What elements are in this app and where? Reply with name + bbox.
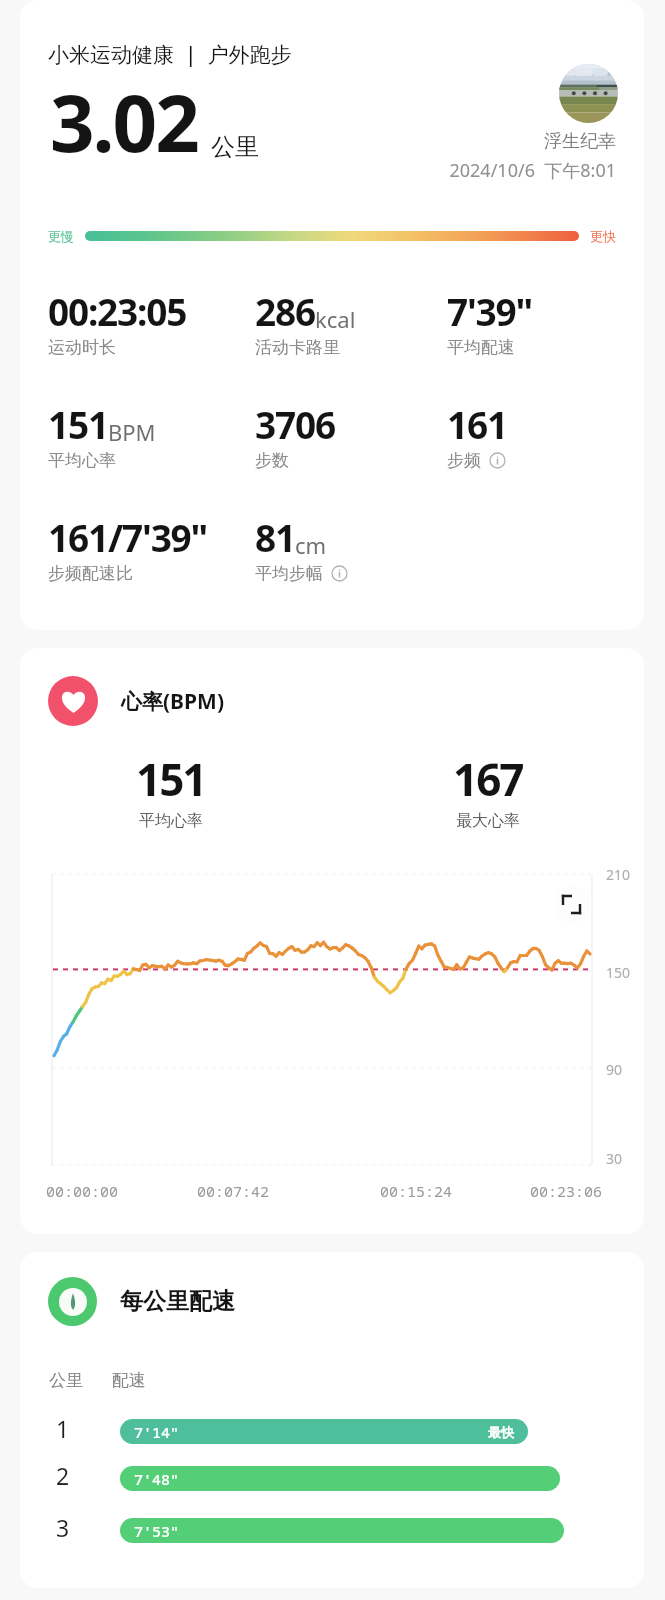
staticText: 更慢 (48, 228, 74, 244)
staticText: 最大心率 (456, 811, 520, 831)
staticText: 每公里配速 (120, 1287, 235, 1316)
button[interactable]: 7'48" (120, 1466, 560, 1491)
staticText: 心率(BPM) (121, 687, 225, 716)
staticText: 3.02 (50, 69, 198, 175)
staticText: 2 (56, 1460, 70, 1491)
staticText: 00:00:00 (46, 1181, 119, 1201)
staticText: BPM (108, 417, 156, 447)
staticText: 7'48" (134, 1469, 180, 1489)
staticText: 运动时长 (48, 337, 116, 358)
staticText: 3 (56, 1512, 70, 1543)
staticText: 161 (447, 399, 507, 449)
staticText: 151 (136, 749, 206, 809)
staticText: 平均心率 (48, 450, 116, 471)
button[interactable]: Expand chart (553, 886, 590, 923)
staticText: 150 (606, 963, 631, 982)
staticText: 286 (255, 286, 315, 336)
staticText: 公里 (49, 1370, 83, 1391)
staticText: 7'39" (447, 286, 533, 336)
staticText: 活动卡路里 (255, 337, 340, 358)
staticText: 00:23:06 (530, 1181, 603, 1201)
staticText: 161/7'39" (48, 512, 208, 562)
staticText: 167 (453, 749, 523, 809)
staticText: 平均步幅 (255, 563, 323, 584)
staticText: 2024/10/6 下午8:01 (416, 158, 616, 183)
staticText: 配速 (112, 1370, 146, 1391)
staticText: 3706 (255, 399, 335, 449)
button[interactable]: User avatar (559, 64, 618, 123)
staticText: 最快 (488, 1424, 514, 1440)
staticText: kcal (315, 304, 356, 334)
staticText: 00:23:05 (48, 286, 187, 336)
staticText: 平均配速 (447, 337, 515, 358)
staticText: 1 (56, 1413, 70, 1444)
staticText: 30 (606, 1149, 623, 1168)
staticText: 00:15:24 (380, 1181, 453, 1201)
staticText: 小米运动健康 | 户外跑步 (48, 40, 292, 69)
button[interactable]: 7'53" (120, 1518, 564, 1543)
staticText: 7'14" (134, 1422, 180, 1442)
staticText: 81 (255, 512, 295, 562)
staticText: 151 (48, 399, 108, 449)
staticText: 平均心率 (139, 811, 203, 831)
staticText: 210 (606, 865, 631, 884)
staticText: 更快 (590, 228, 616, 244)
staticText: 7'53" (134, 1521, 180, 1541)
staticText: 步频配速比 (48, 563, 133, 584)
staticText: 步数 (255, 450, 289, 471)
staticText: cm (295, 530, 327, 560)
staticText: 步频 (447, 450, 481, 471)
staticText: 90 (606, 1060, 623, 1079)
staticText: 浮生纪幸 (416, 130, 616, 153)
staticText: 00:07:42 (197, 1181, 270, 1201)
staticText: 公里 (211, 132, 259, 162)
button[interactable]: 7'14" (120, 1419, 528, 1444)
